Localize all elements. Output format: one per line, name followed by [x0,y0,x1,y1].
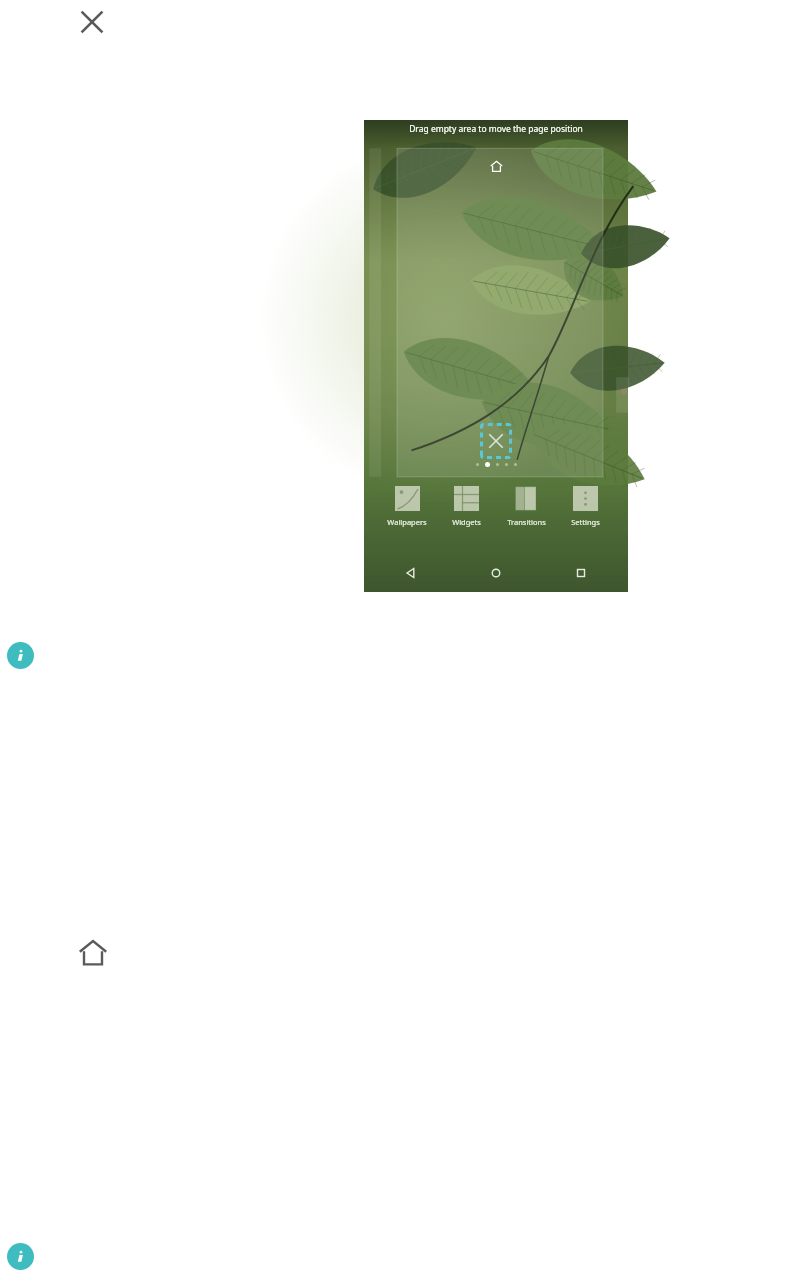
button[interactable]: Transitions [499,486,553,527]
button[interactable]: Home page [486,156,506,176]
button[interactable]: Back [398,560,424,586]
button[interactable]: Close [70,0,114,44]
button[interactable]: Information [7,642,34,669]
staticText: Transitions [507,517,546,527]
button[interactable]: Widgets [439,486,493,527]
button[interactable]: Home [70,930,116,976]
button[interactable]: Home [483,560,509,586]
staticText: Settings [571,517,600,527]
staticText: Drag empty area to move the page positio… [409,123,583,135]
button[interactable]: Information [7,1243,34,1270]
button[interactable]: Wallpapers [380,486,434,527]
button[interactable]: Delete page [480,423,512,459]
staticText: Widgets [452,517,481,527]
staticText: Wallpapers [387,517,427,527]
button[interactable]: Settings [558,486,612,527]
button[interactable]: Recents [568,560,594,586]
